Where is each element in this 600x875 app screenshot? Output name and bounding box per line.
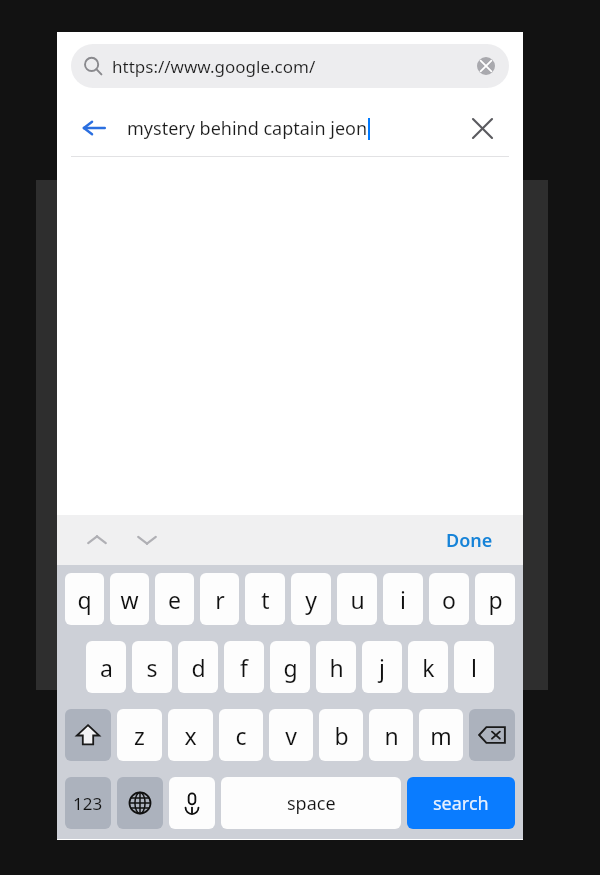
- button[interactable]: Back: [57, 100, 523, 156]
- staticText: p: [488, 584, 503, 615]
- button[interactable]: Done: [436, 522, 503, 559]
- staticText: t: [261, 584, 270, 615]
- button[interactable]: Dictate: [169, 777, 215, 829]
- staticText: d: [191, 652, 206, 683]
- staticText: c: [235, 720, 247, 751]
- button[interactable]: Clear address: [473, 53, 499, 79]
- button[interactable]: g: [270, 641, 310, 693]
- staticText: l: [471, 652, 477, 683]
- staticText: mystery behind captain jeon: [127, 116, 368, 141]
- button[interactable]: e: [155, 573, 194, 625]
- staticText: Done: [446, 528, 493, 553]
- button[interactable]: h: [316, 641, 356, 693]
- button[interactable]: f: [224, 641, 264, 693]
- button[interactable]: j: [362, 641, 402, 693]
- button[interactable]: Backspace: [469, 709, 515, 761]
- staticText: u: [350, 584, 365, 615]
- button[interactable]: s: [132, 641, 172, 693]
- staticText: a: [100, 652, 113, 683]
- button[interactable]: y: [291, 573, 331, 625]
- staticText: space: [287, 791, 336, 816]
- staticText: k: [422, 652, 435, 683]
- button[interactable]: search: [407, 777, 515, 829]
- button[interactable]: c: [219, 709, 263, 761]
- button[interactable]: n: [369, 709, 413, 761]
- button[interactable]: l: [454, 641, 494, 693]
- staticText: s: [146, 652, 158, 683]
- staticText: o: [442, 584, 456, 615]
- button[interactable]: https://www.google.com/: [71, 44, 509, 88]
- button[interactable]: o: [429, 573, 469, 625]
- staticText: w: [120, 584, 139, 615]
- staticText: n: [384, 720, 399, 751]
- button[interactable]: v: [269, 709, 313, 761]
- button[interactable]: x: [168, 709, 213, 761]
- button[interactable]: Next field: [129, 522, 165, 558]
- staticText: x: [184, 720, 197, 751]
- staticText: e: [168, 584, 181, 615]
- button[interactable]: w: [110, 573, 149, 625]
- staticText: g: [283, 652, 298, 683]
- staticText: r: [215, 584, 225, 615]
- staticText: y: [305, 584, 317, 615]
- staticText: j: [379, 652, 385, 683]
- button[interactable]: 123: [65, 777, 111, 829]
- button[interactable]: Close find bar: [465, 111, 499, 145]
- staticText: 123: [73, 792, 103, 815]
- staticText: https://www.google.com/: [112, 55, 316, 78]
- staticText: z: [134, 720, 145, 751]
- button[interactable]: Previous field: [79, 522, 115, 558]
- button[interactable]: b: [319, 709, 363, 761]
- button[interactable]: space: [221, 777, 401, 829]
- button[interactable]: Change keyboard: [117, 777, 163, 829]
- button[interactable]: d: [178, 641, 218, 693]
- button[interactable]: p: [475, 573, 515, 625]
- button[interactable]: a: [86, 641, 126, 693]
- staticText: q: [77, 584, 92, 615]
- staticText: search: [433, 791, 489, 816]
- button[interactable]: k: [408, 641, 448, 693]
- staticText: i: [400, 584, 406, 615]
- staticText: b: [334, 720, 349, 751]
- staticText: h: [329, 652, 344, 683]
- button[interactable]: m: [419, 709, 463, 761]
- button[interactable]: Shift: [65, 709, 111, 761]
- staticText: m: [430, 720, 452, 751]
- button[interactable]: t: [245, 573, 285, 625]
- button[interactable]: Back: [79, 113, 109, 143]
- button[interactable]: z: [117, 709, 162, 761]
- staticText: f: [240, 652, 248, 683]
- button[interactable]: r: [200, 573, 239, 625]
- button[interactable]: i: [383, 573, 423, 625]
- staticText: v: [285, 720, 297, 751]
- button[interactable]: u: [337, 573, 377, 625]
- button[interactable]: q: [65, 573, 104, 625]
